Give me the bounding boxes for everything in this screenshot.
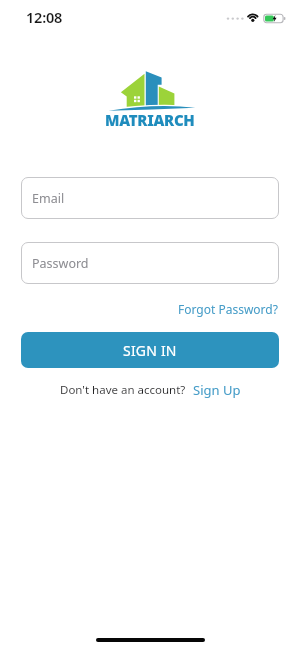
button[interactable]: Password (21, 242, 279, 284)
staticText: Password (32, 255, 89, 272)
button[interactable]: Email (21, 177, 279, 219)
button[interactable]: SIGN IN (21, 332, 279, 368)
button[interactable]: Sign Up (186, 381, 241, 399)
staticText: Email (32, 190, 65, 207)
staticText: MATRIARCH (105, 110, 195, 130)
staticText: SIGN IN (123, 341, 177, 360)
staticText: Sign Up (193, 381, 241, 399)
button[interactable]: Forgot Password? (178, 301, 278, 317)
staticText: 12:08 (26, 7, 63, 27)
staticText: Forgot Password? (178, 301, 278, 317)
staticText: Don't have an account? (60, 382, 186, 398)
